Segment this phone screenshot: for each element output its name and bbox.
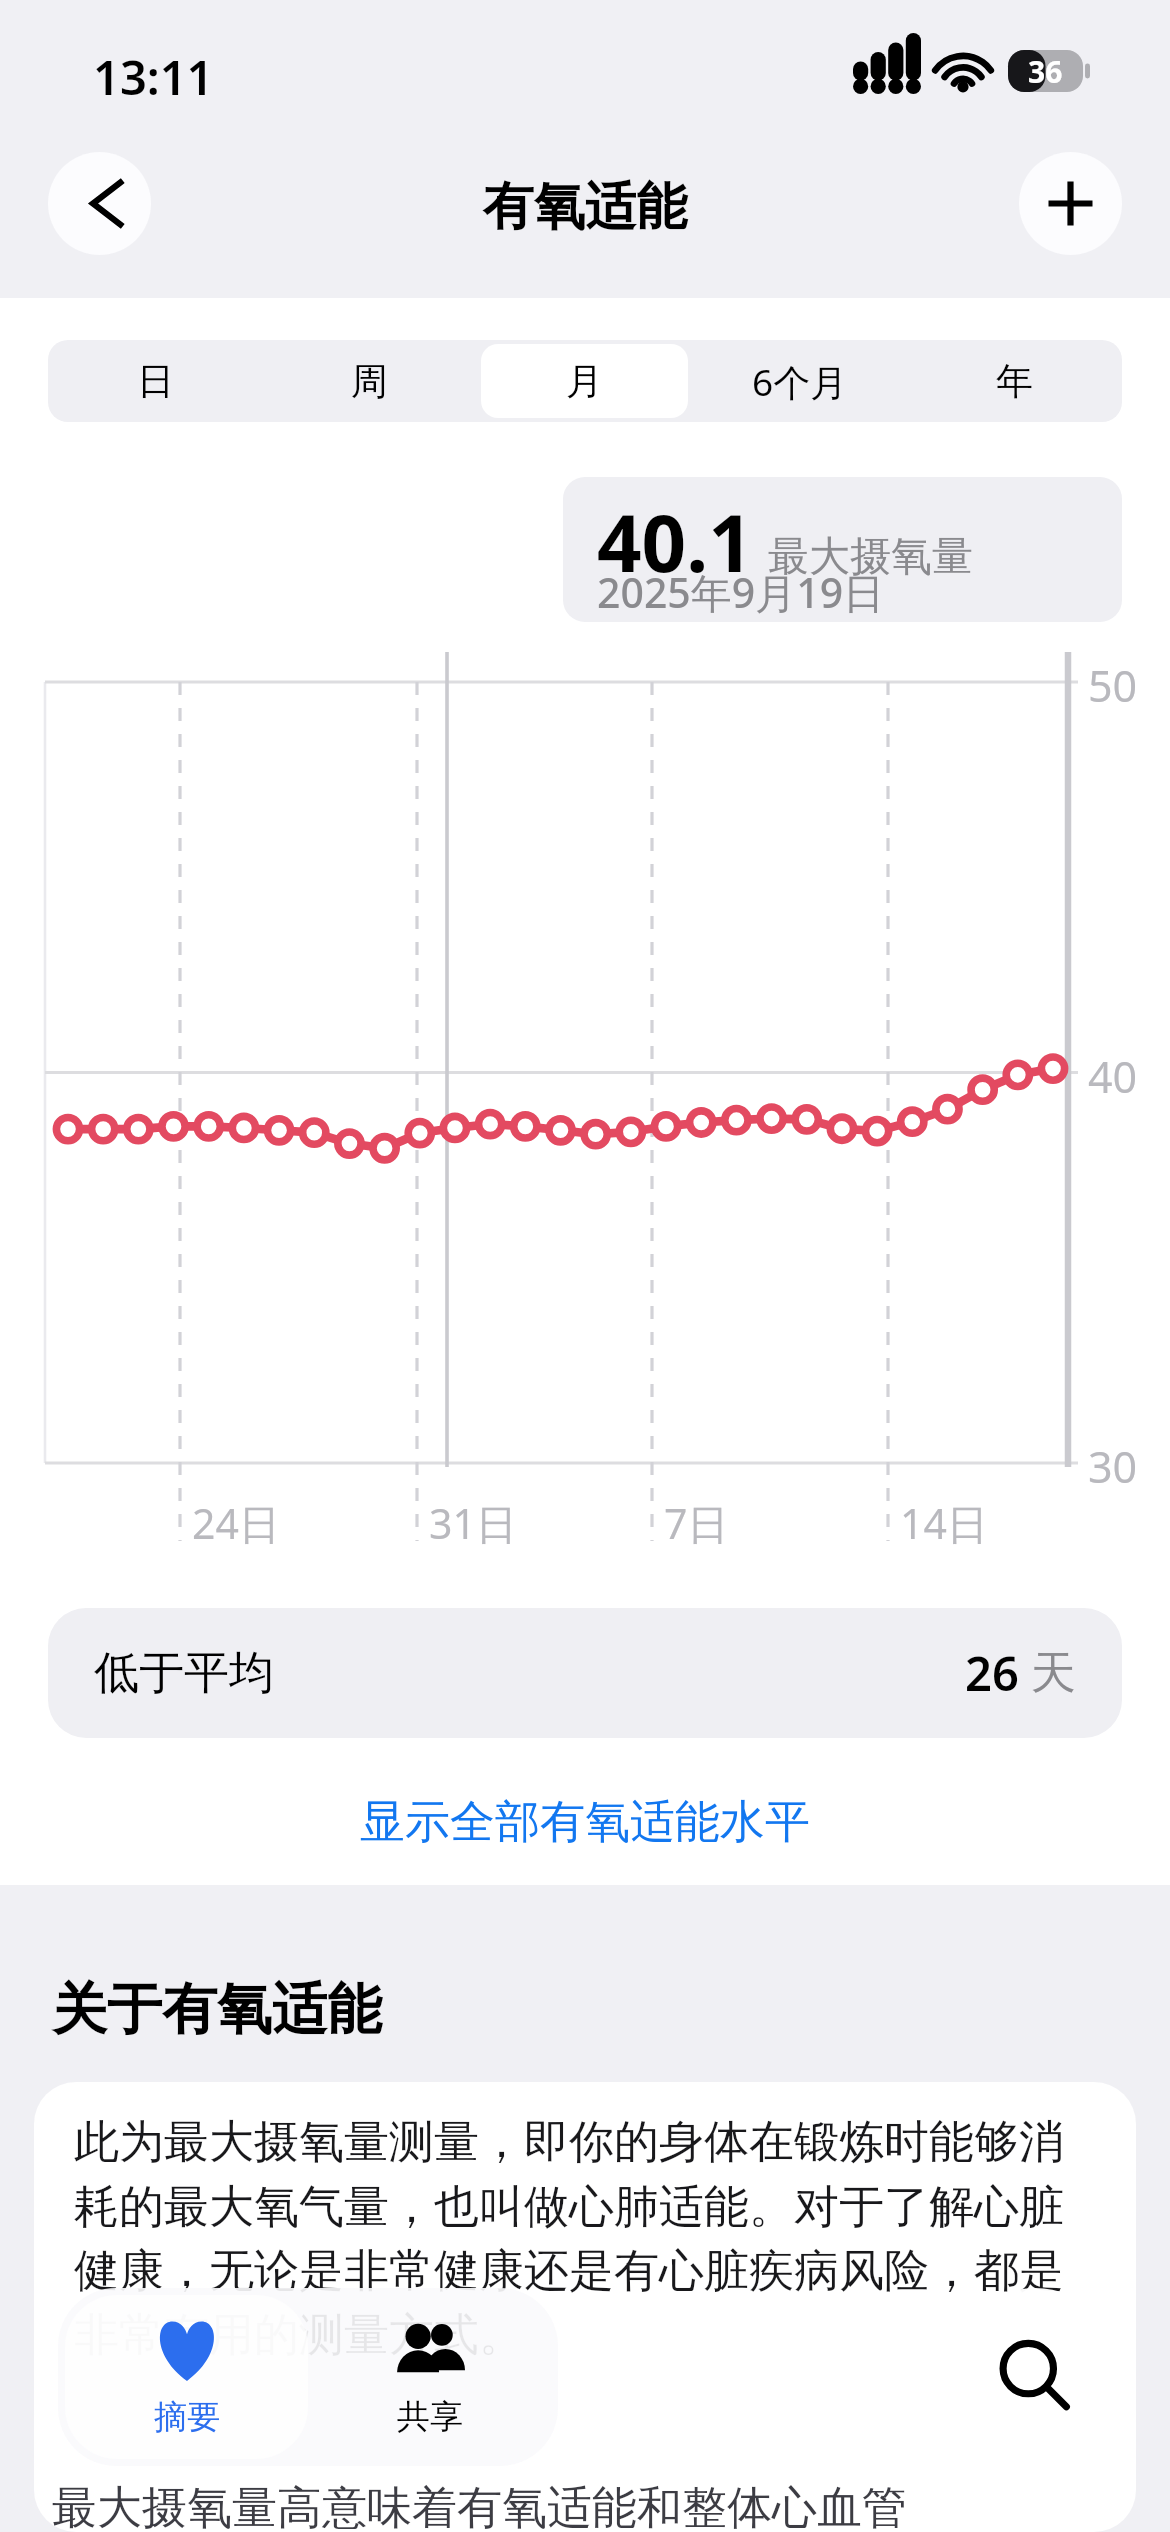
staticText: 天 <box>1031 1645 1076 1702</box>
staticText: 24日 <box>192 1495 280 1551</box>
staticText: 有氧适能 <box>0 175 1170 239</box>
staticText: 13:11 <box>93 45 214 109</box>
staticText: 关于有氧适能 <box>52 1975 382 2044</box>
staticText: 摘要 <box>154 2396 220 2438</box>
staticText: 30 <box>1088 1437 1138 1496</box>
staticText: 2025年9月19日 <box>597 564 885 620</box>
button[interactable]: 年 <box>911 344 1118 418</box>
button[interactable]: 6个月 <box>696 344 903 418</box>
button[interactable]: 摘要 <box>65 2295 308 2459</box>
button[interactable]: 显示全部有氧适能水平 <box>346 1786 824 1859</box>
staticText: 最大摄氧量高意味着有氧适能和整体心血管 <box>52 2480 907 2532</box>
staticText: 31日 <box>429 1495 517 1551</box>
staticText: 7日 <box>664 1495 729 1551</box>
staticText: 40 <box>1088 1047 1138 1106</box>
staticText: 14日 <box>900 1495 988 1551</box>
button[interactable]: 返回 <box>48 152 151 255</box>
button[interactable]: 添加数据 <box>1019 152 1122 255</box>
staticText: 26 <box>965 1641 1019 1705</box>
button[interactable]: 低于平均 <box>48 1608 1122 1738</box>
button[interactable]: 日 <box>52 344 258 418</box>
staticText: 日 <box>137 358 174 405</box>
staticText: 最大摄氧量 <box>768 531 973 583</box>
staticText: 6个月 <box>752 356 848 407</box>
button[interactable]: 共享 <box>308 2295 551 2459</box>
staticText: 此为最大摄氧量测量，即你的身体在锻炼时能够消耗的最大氧气量，也叫做心肺适能。对于… <box>74 2114 1096 2363</box>
staticText: 周 <box>351 358 388 405</box>
staticText: 低于平均 <box>94 1645 274 1702</box>
staticText: 36 <box>1028 51 1063 92</box>
staticText: 显示全部有氧适能水平 <box>360 1794 810 1851</box>
button[interactable]: 搜索 <box>946 2288 1124 2466</box>
button[interactable]: 月 <box>481 344 688 418</box>
staticText: 月 <box>566 358 603 405</box>
staticText: 50 <box>1088 656 1138 715</box>
staticText: 共享 <box>397 2396 463 2438</box>
staticText: 年 <box>996 358 1033 405</box>
staticText: 40.1 <box>597 489 753 595</box>
button[interactable]: 周 <box>266 344 473 418</box>
